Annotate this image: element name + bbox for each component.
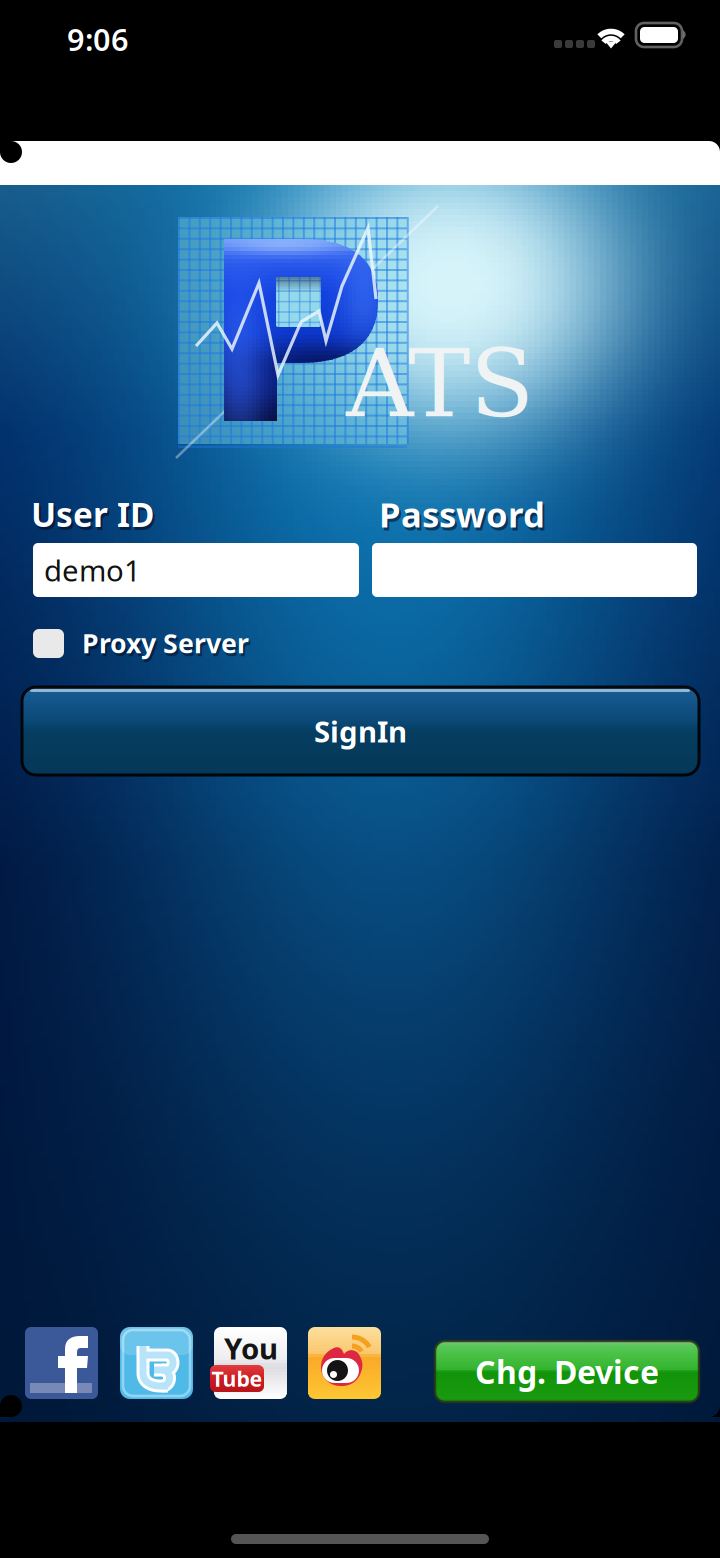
staticText: Password [381, 494, 547, 540]
button[interactable]: SignIn [22, 687, 699, 775]
button[interactable]: Proxy Server [25, 620, 425, 666]
button[interactable]: Chg. Device [435, 1341, 699, 1402]
staticText: Password [379, 491, 545, 537]
staticText: User ID [31, 492, 154, 536]
staticText: SignIn [314, 711, 407, 750]
staticText: ATS [346, 330, 534, 438]
staticText: Tube [211, 1364, 262, 1393]
staticText: You [224, 1328, 278, 1367]
button[interactable]: Weibo [308, 1327, 381, 1399]
staticText: Proxy Server [82, 625, 249, 661]
staticText: Chg. Device [475, 1350, 659, 1393]
button[interactable]: Facebook [25, 1327, 98, 1399]
button[interactable]: YouTube [214, 1327, 287, 1399]
staticText: Proxy Server [84, 628, 251, 664]
staticText: 9:06 [67, 19, 129, 59]
staticText: demo1 [44, 550, 141, 589]
button[interactable]: Twitter [120, 1327, 193, 1399]
staticText: User ID [33, 495, 156, 539]
